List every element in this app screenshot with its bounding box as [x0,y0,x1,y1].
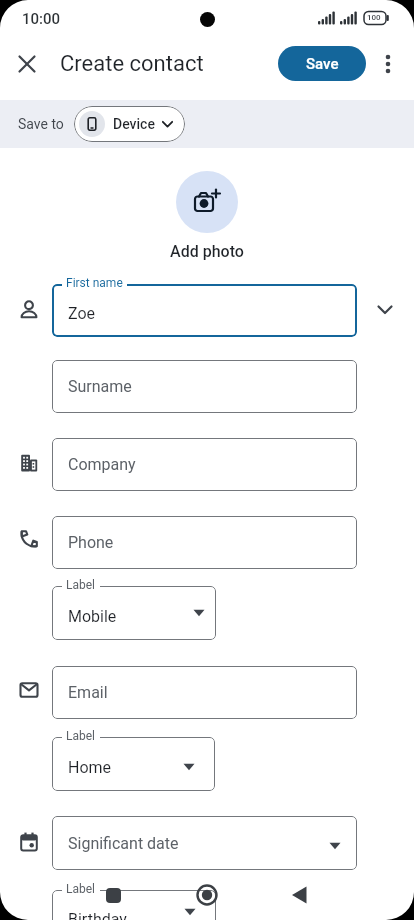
button[interactable]: Home [52,737,215,791]
button[interactable]: Phone [52,516,357,569]
button[interactable]: Birthday [52,890,216,920]
button[interactable] [176,171,238,233]
staticText: 10:00 [22,10,61,28]
button[interactable]: Surname [52,360,357,413]
staticText: Company [68,455,136,474]
button[interactable]: Company [52,438,357,491]
button[interactable]: Zoe [52,284,357,337]
button[interactable] [17,54,37,74]
button[interactable] [106,888,121,903]
button[interactable]: Email [52,666,357,719]
staticText: Email [68,683,108,702]
button[interactable]: Device [74,106,185,142]
button[interactable] [374,300,396,320]
button[interactable] [381,50,395,78]
button[interactable]: Save [278,46,366,81]
staticText: Save to [18,116,64,132]
staticText: Mobile [68,607,117,626]
staticText: Surname [68,377,132,396]
staticText: Significant date [68,834,179,853]
staticText: 100 [367,13,381,22]
button[interactable]: Mobile [52,586,216,640]
button[interactable] [195,883,219,907]
staticText: Home [68,758,112,777]
staticText: First name [66,276,123,290]
staticText: Phone [68,533,114,552]
staticText: Label [66,729,96,743]
staticText: Add photo [170,242,244,261]
staticText: Label [66,882,96,896]
button[interactable] [291,886,308,904]
button[interactable]: Significant date [52,816,357,870]
staticText: Birthday [68,910,127,920]
staticText: Save [306,55,339,73]
staticText: Zoe [68,304,96,323]
staticText: Device [113,116,155,132]
staticText: Label [66,578,96,592]
staticText: Create contact [60,51,204,77]
